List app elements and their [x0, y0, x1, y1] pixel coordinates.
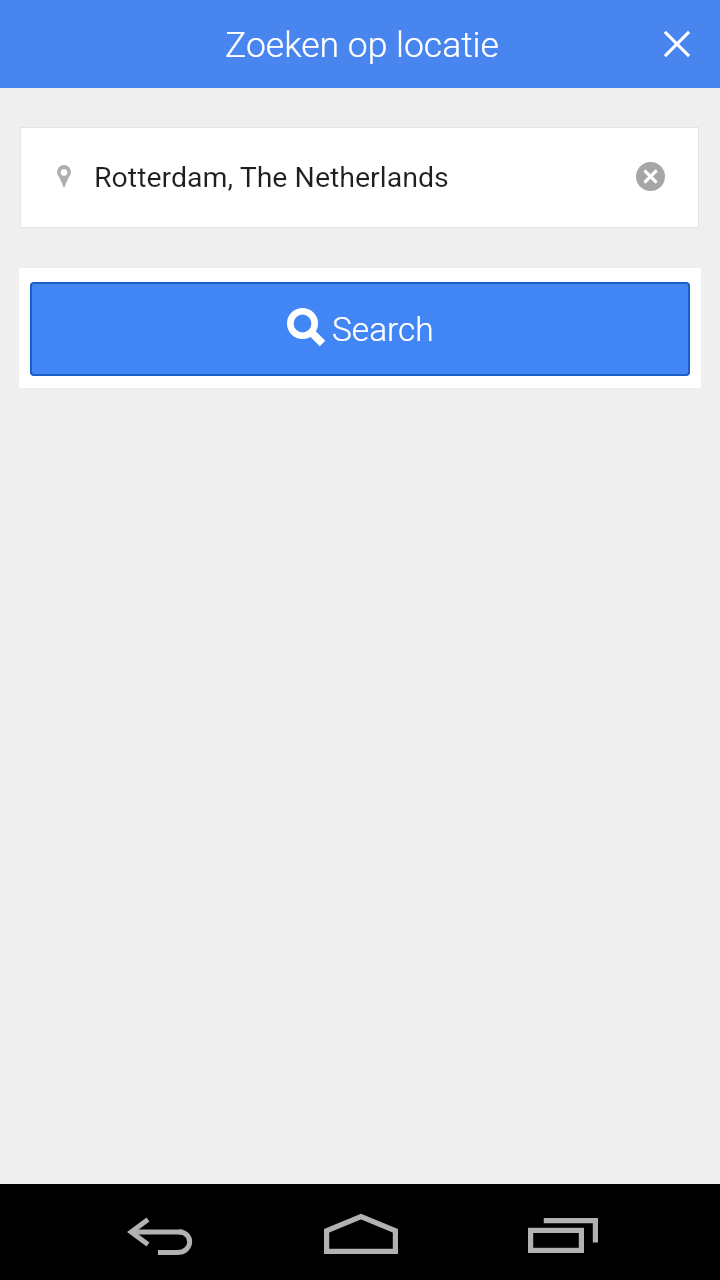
- button[interactable]: Rotterdam, The Netherlands: [20, 127, 699, 228]
- button[interactable]: Close: [645, 12, 709, 76]
- button[interactable]: Home: [261, 1188, 461, 1280]
- button[interactable]: Search: [30, 282, 690, 376]
- staticText: Rotterdam, The Netherlands: [94, 161, 449, 194]
- staticText: Search: [332, 310, 434, 349]
- button[interactable]: Recent apps: [461, 1189, 664, 1280]
- button[interactable]: Back: [61, 1191, 262, 1280]
- button[interactable]: Clear text: [622, 148, 678, 204]
- staticText: Zoeken op locatie: [225, 24, 499, 66]
